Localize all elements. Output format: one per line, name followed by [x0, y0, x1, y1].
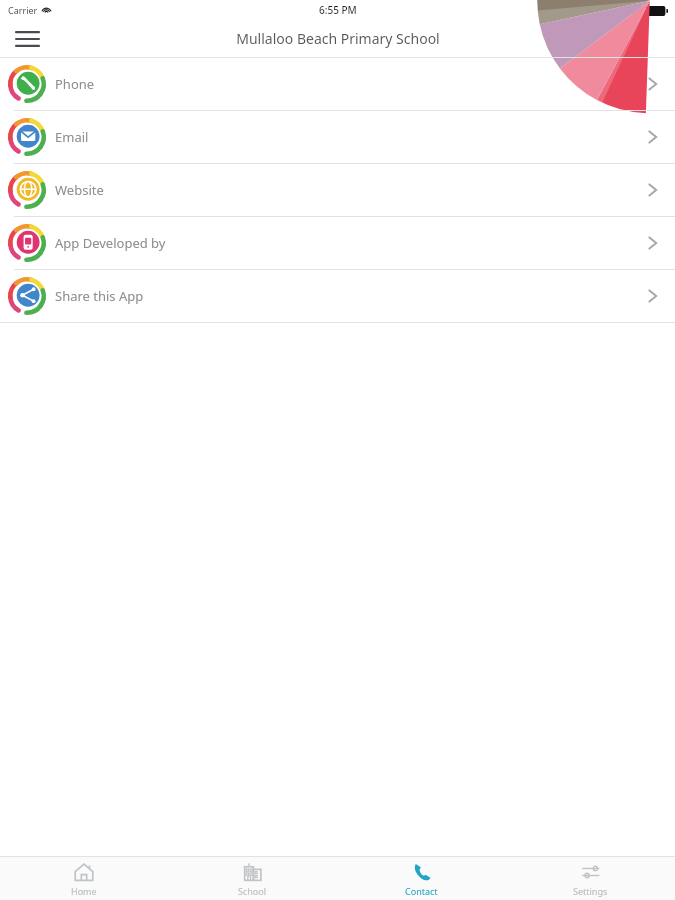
- staticText: School: [238, 885, 267, 897]
- staticText: Settings: [573, 885, 608, 897]
- button[interactable]: Share this App: [0, 270, 675, 322]
- button[interactable]: Menu: [10, 22, 44, 56]
- staticText: Home: [71, 885, 97, 897]
- staticText: Contact: [405, 885, 438, 897]
- button[interactable]: Email: [0, 111, 675, 163]
- staticText: Carrier: [8, 4, 38, 16]
- button[interactable]: Phone: [0, 58, 675, 110]
- staticText: Phone: [55, 75, 95, 93]
- button[interactable]: Contact: [337, 857, 506, 900]
- button[interactable]: School: [168, 857, 337, 900]
- staticText: Share this App: [55, 287, 144, 305]
- button[interactable]: Website: [0, 164, 675, 216]
- button[interactable]: Home: [0, 857, 168, 900]
- staticText: Email: [55, 128, 89, 146]
- staticText: 100%: [622, 5, 643, 16]
- button[interactable]: App Developed by: [0, 217, 675, 269]
- staticText: App Developed by: [55, 234, 166, 252]
- button[interactable]: Settings: [506, 857, 675, 900]
- staticText: Website: [55, 181, 104, 199]
- staticText: Mullaloo Beach Primary School: [236, 29, 440, 48]
- staticText: 6:55 PM: [319, 3, 357, 17]
